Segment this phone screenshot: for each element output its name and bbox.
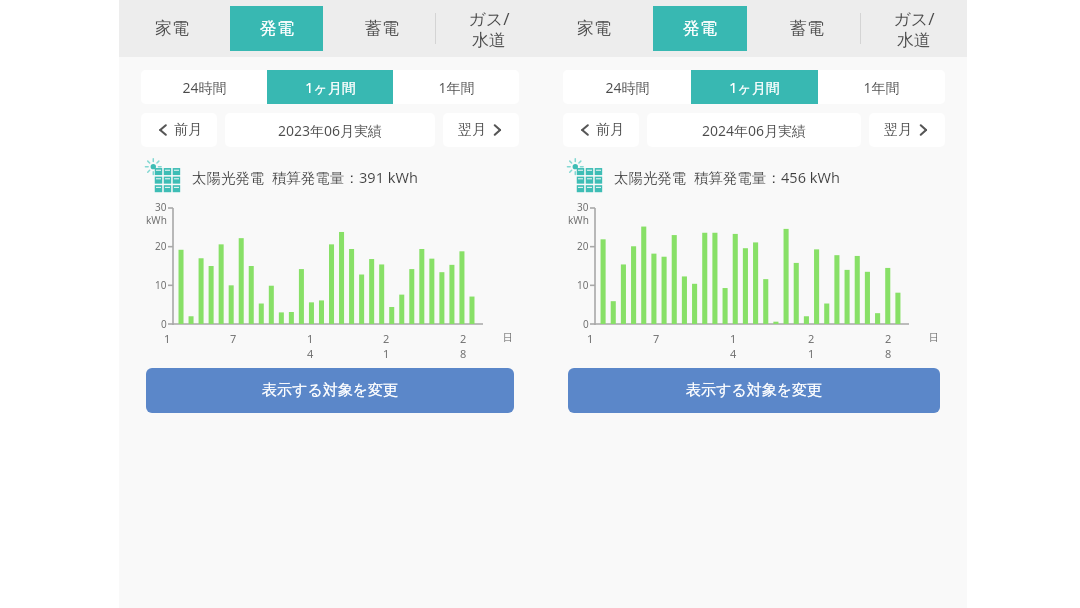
staticText: 太陽光発電 積算発電量：391 kWh [192, 167, 418, 187]
staticText: 前月 [174, 121, 202, 139]
button[interactable]: ガス/ [436, 0, 541, 57]
staticText: ガス/ [468, 7, 510, 30]
staticText: 蓄電 [365, 18, 399, 39]
button[interactable]: 1ヶ月間 [267, 70, 393, 104]
staticText: kWh [146, 213, 167, 227]
button[interactable]: 24時間 [141, 70, 267, 104]
staticText: 水道 [897, 30, 931, 51]
button[interactable]: 翌月 [869, 113, 945, 147]
staticText: 家電 [155, 18, 189, 39]
button[interactable]: 発電 [653, 6, 747, 51]
button[interactable]: 表示する対象を変更 [568, 368, 940, 413]
staticText: 日 [929, 331, 939, 344]
button[interactable]: 家電 [547, 6, 641, 51]
staticText: 1年間 [863, 78, 900, 97]
button[interactable]: 発電 [230, 6, 323, 51]
other: Next month [916, 123, 930, 137]
staticText: 0 [161, 317, 167, 331]
staticText: 家電 [577, 18, 611, 39]
staticText: 2023年06月実績 [278, 121, 383, 140]
staticText: 10 [155, 278, 167, 292]
other: Next month [490, 123, 504, 137]
button[interactable]: Previous month [141, 113, 217, 147]
staticText: 日 [503, 331, 513, 344]
button[interactable]: 1年間 [818, 70, 945, 104]
button[interactable]: 2024年06月実績 [647, 113, 861, 147]
staticText: 24時間 [182, 78, 227, 97]
staticText: ガス/ [893, 7, 935, 30]
staticText: 24時間 [605, 78, 650, 97]
staticText: 1ヶ月間 [729, 78, 780, 97]
staticText: 20 [155, 239, 167, 253]
button[interactable]: 表示する対象を変更 [146, 368, 514, 413]
staticText: 20 [577, 239, 589, 253]
staticText: 表示する対象を変更 [686, 381, 823, 400]
staticText: 翌月 [458, 121, 486, 139]
staticText: 水道 [472, 30, 506, 51]
button[interactable]: ガス/ [861, 0, 967, 57]
button[interactable]: 翌月 [443, 113, 519, 147]
staticText: 太陽光発電 積算発電量：456 kWh [614, 167, 840, 187]
button[interactable]: 蓄電 [335, 6, 429, 51]
other: Previous month [156, 123, 170, 137]
staticText: 1年間 [438, 78, 475, 97]
button[interactable]: Previous month [563, 113, 639, 147]
staticText: 1ヶ月間 [305, 78, 356, 97]
staticText: 2024年06月実績 [702, 121, 807, 140]
staticText: 蓄電 [790, 18, 824, 39]
button[interactable]: 1ヶ月間 [691, 70, 818, 104]
staticText: kWh [568, 213, 589, 227]
staticText: 0 [583, 317, 589, 331]
button[interactable]: 蓄電 [759, 6, 854, 51]
staticText: 10 [577, 278, 589, 292]
button[interactable]: 24時間 [563, 70, 691, 104]
staticText: 30 [155, 200, 167, 214]
button[interactable]: 家電 [125, 6, 218, 51]
button[interactable]: 2023年06月実績 [225, 113, 435, 147]
staticText: 発電 [260, 18, 294, 39]
staticText: 30 [577, 200, 589, 214]
staticText: 発電 [683, 18, 717, 39]
staticText: 表示する対象を変更 [262, 381, 399, 400]
button[interactable]: 1年間 [393, 70, 519, 104]
other: Previous month [578, 123, 592, 137]
staticText: 翌月 [884, 121, 912, 139]
staticText: 前月 [596, 121, 624, 139]
